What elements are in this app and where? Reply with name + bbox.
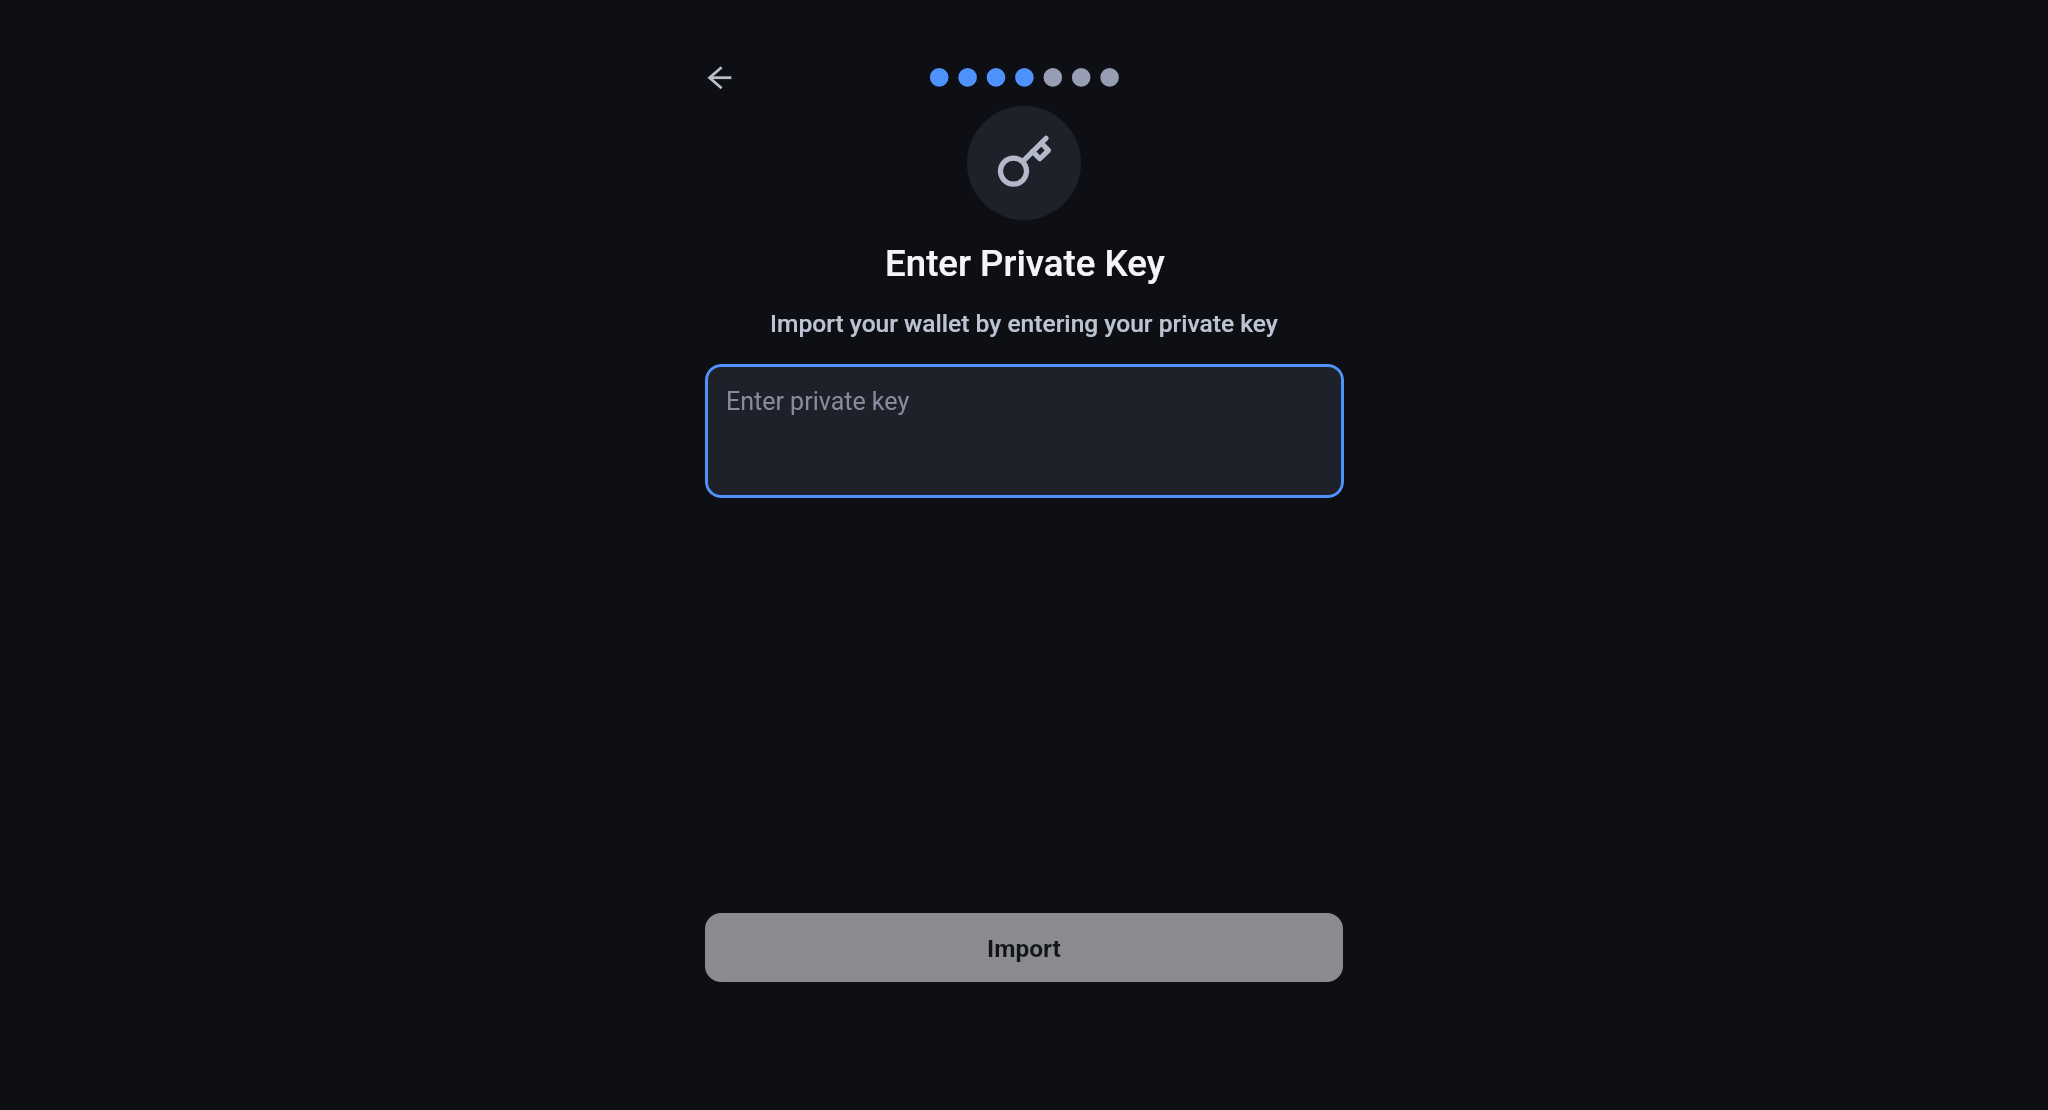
staticText: Import your wallet by entering your priv…	[770, 309, 1278, 338]
staticText: Enter Private Key	[885, 242, 1165, 285]
button[interactable]: Back	[696, 53, 744, 101]
button[interactable]: Private key input	[705, 364, 1344, 498]
staticText: Import	[987, 934, 1061, 963]
staticText: Enter private key	[726, 387, 910, 416]
button[interactable]: Step 4 of 7	[924, 62, 1125, 92]
button[interactable]: Import	[705, 913, 1343, 982]
